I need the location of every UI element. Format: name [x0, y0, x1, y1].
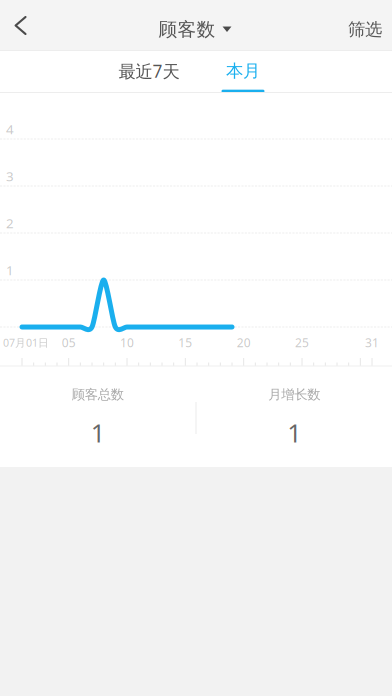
staticText: 1	[287, 416, 301, 449]
staticText: 月增长数	[268, 386, 320, 403]
staticText: 1	[6, 261, 14, 279]
staticText: 1	[91, 416, 105, 449]
staticText: 15	[178, 334, 192, 350]
staticText: 筛选	[348, 19, 382, 40]
staticText: 25	[295, 334, 309, 350]
staticText: 3	[6, 167, 14, 185]
staticText: 顾客数	[158, 18, 215, 41]
staticText: 20	[237, 334, 251, 350]
staticText: 07月01日	[3, 335, 49, 350]
button[interactable]: 筛选	[338, 4, 392, 55]
staticText: 2	[6, 214, 14, 232]
staticText: 31	[365, 334, 379, 350]
staticText: 4	[6, 120, 14, 138]
button[interactable]: 最近7天	[96, 51, 202, 92]
staticText: 10	[120, 334, 134, 350]
staticText: 05	[62, 334, 76, 350]
button[interactable]: 返回	[0, 0, 60, 51]
button[interactable]: 顾客数	[140, 4, 250, 55]
staticText: 顾客总数	[72, 386, 124, 403]
button[interactable]: 本月	[190, 51, 296, 92]
staticText: 最近7天	[118, 59, 179, 82]
staticText: 本月	[226, 60, 260, 82]
